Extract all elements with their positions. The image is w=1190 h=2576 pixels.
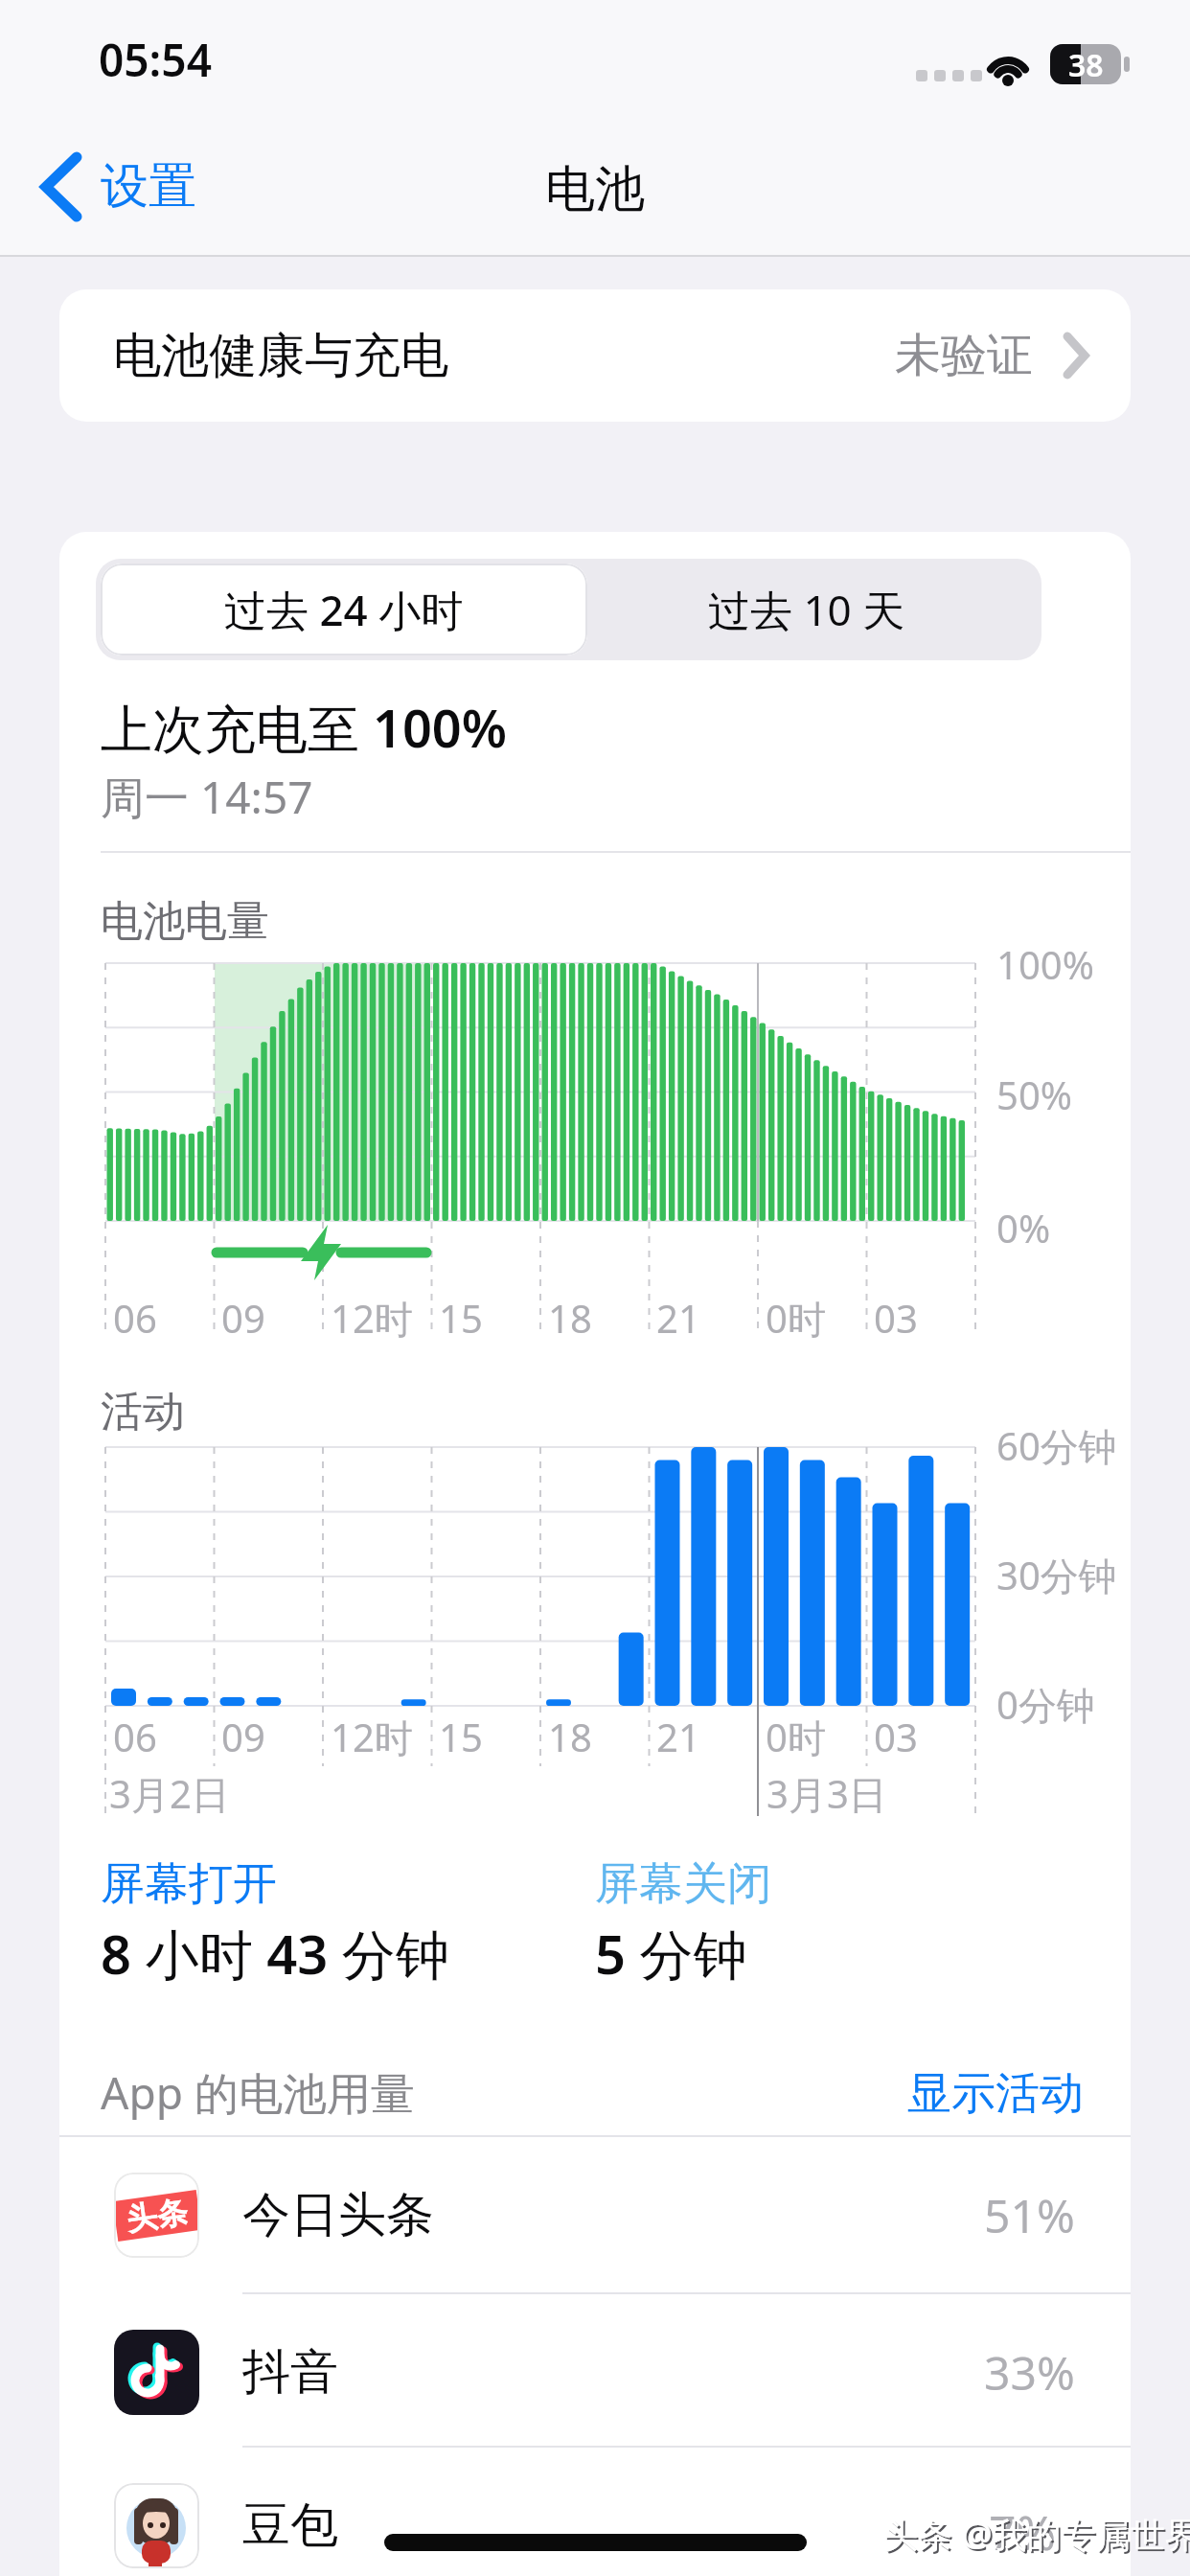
staticText: 3月3日 (767, 1767, 887, 1820)
staticText: 周一 14:57 (101, 767, 313, 827)
staticText: 8 小时 43 分钟 (101, 1917, 449, 1989)
button[interactable]: 过去 10 天 (577, 563, 1037, 655)
button[interactable]: 过去 24 小时 (101, 563, 587, 655)
staticText: 06 (113, 1292, 157, 1344)
staticText: 30分钟 (996, 1549, 1117, 1601)
staticText: 18 (548, 1292, 592, 1344)
button[interactable]: 设置 (96, 151, 230, 224)
staticText: 过去 24 小时 (224, 581, 464, 638)
staticText: 电池健康与充电 (113, 326, 448, 386)
staticText: 头条 @我的专属世界 (885, 2513, 1190, 2560)
staticText: 15 (439, 1711, 483, 1762)
staticText: 抖音 (242, 2342, 338, 2403)
button[interactable]: 电池健康与充电 (59, 289, 1131, 422)
staticText: 100% (996, 938, 1094, 990)
staticText: 过去 10 天 (708, 581, 905, 638)
staticText: 3月2日 (109, 1767, 230, 1820)
button[interactable]: 豆包 (59, 2448, 1131, 2576)
staticText: 51% (984, 2184, 1075, 2246)
staticText: 15 (439, 1292, 483, 1344)
staticText: 电池 (545, 158, 645, 221)
staticText: 屏幕关闭 (595, 1856, 771, 1912)
staticText: 豆包 (242, 2495, 338, 2556)
staticText: 未验证 (895, 327, 1033, 384)
staticText: 0% (996, 1202, 1051, 1253)
staticText: 21 (656, 1292, 700, 1344)
staticText: 09 (221, 1711, 265, 1762)
staticText: 21 (656, 1711, 700, 1762)
staticText: 7% (989, 2499, 1057, 2564)
staticText: 活动 (101, 1386, 185, 1438)
staticText: 05:54 (99, 30, 212, 90)
staticText: 设置 (101, 156, 196, 217)
staticText: 06 (113, 1711, 157, 1762)
staticText: 18 (548, 1711, 592, 1762)
staticText: 头条 @我的专属世界 (883, 2511, 1190, 2558)
staticText: 03 (874, 1711, 918, 1762)
staticText: 03 (874, 1292, 918, 1344)
staticText: 09 (221, 1292, 265, 1344)
button[interactable]: 抖音 (59, 2294, 1131, 2449)
staticText: 0时 (766, 1292, 826, 1345)
staticText: 头条 (124, 2192, 190, 2239)
staticText: 上次充电至 100% (101, 692, 507, 763)
button[interactable]: 头条 (59, 2137, 1131, 2292)
staticText: 38 (1068, 44, 1104, 84)
staticText: 12时 (331, 1292, 413, 1345)
staticText: 60分钟 (996, 1419, 1117, 1472)
staticText: 显示活动 (907, 2066, 1084, 2122)
staticText: 5 分钟 (595, 1917, 747, 1989)
staticText: 12时 (331, 1711, 413, 1763)
staticText: 50% (996, 1069, 1072, 1120)
staticText: 今日头条 (242, 2185, 434, 2245)
staticText: 0分钟 (996, 1678, 1095, 1731)
staticText: 33% (984, 2341, 1075, 2403)
staticText: App 的电池用量 (101, 2062, 415, 2123)
staticText: 0时 (766, 1711, 826, 1763)
staticText: 屏幕打开 (101, 1856, 277, 1912)
staticText: 电池电量 (101, 895, 269, 948)
button[interactable]: 显示活动 (896, 2058, 1102, 2120)
